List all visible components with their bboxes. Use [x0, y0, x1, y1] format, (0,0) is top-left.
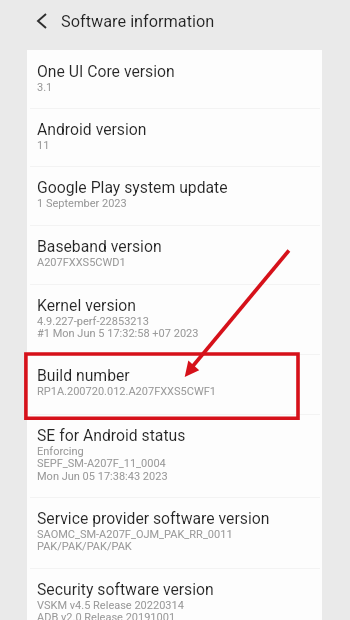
staticText: 3.1: [37, 81, 53, 94]
button[interactable]: Back: [27, 9, 59, 33]
staticText: Android version: [37, 120, 147, 138]
button[interactable]: Build number: [27, 354, 322, 414]
button[interactable]: One UI Core version: [27, 50, 322, 108]
button[interactable]: Android version: [27, 108, 322, 166]
staticText: Enforcing: [37, 445, 84, 458]
staticText: PAK/PAK/PAK/PAK: [37, 540, 132, 553]
staticText: SEPF_SM-A207F_11_0004: [37, 457, 166, 470]
button[interactable]: Service provider software version: [27, 497, 322, 568]
staticText: RP1A.200720.012.A207FXXS5CWF1: [37, 385, 216, 398]
staticText: 4.9.227-perf-22853213: [37, 315, 149, 328]
staticText: A207FXXS5CWD1: [37, 256, 126, 269]
staticText: #1 Mon Jun 5 17:32:58 +07 2023: [37, 327, 199, 340]
staticText: One UI Core version: [37, 62, 175, 80]
button[interactable]: Kernel version: [27, 284, 322, 354]
staticText: 11: [37, 139, 50, 152]
button[interactable]: Security software version: [27, 568, 322, 620]
button[interactable]: Google Play system update: [27, 166, 322, 224]
staticText: 1 September 2023: [37, 197, 127, 210]
staticText: Security software version: [37, 580, 214, 598]
staticText: SAOMC_SM-A207F_OJM_PAK_RR_0011: [37, 528, 233, 541]
staticText: SE for Android status: [37, 426, 186, 444]
staticText: Build number: [37, 366, 130, 384]
button[interactable]: SE for Android status: [27, 414, 322, 497]
staticText: Kernel version: [37, 296, 137, 314]
staticText: ADB v2.0 Release 20191001: [37, 611, 176, 620]
staticText: VSKM v4.5 Release 20220314: [37, 599, 184, 612]
staticText: Mon Jun 05 17:38:43 2023: [37, 470, 168, 483]
button[interactable]: Baseband version: [27, 225, 322, 284]
staticText: Software information: [61, 12, 215, 31]
staticText: Service provider software version: [37, 509, 270, 527]
staticText: Google Play system update: [37, 178, 228, 196]
staticText: Baseband version: [37, 237, 162, 255]
